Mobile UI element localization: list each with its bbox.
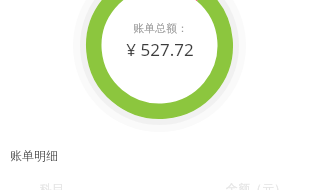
staticText: 账单明细 xyxy=(10,148,58,163)
button[interactable]: 账单总额图表 xyxy=(0,0,320,128)
button[interactable]: 科目 xyxy=(0,181,320,190)
staticText: 账单总额： xyxy=(133,21,188,35)
staticText: 金额（元） xyxy=(226,181,286,190)
button[interactable]: 账单明细 xyxy=(0,143,320,171)
staticText: ¥ 527.72 xyxy=(126,38,194,61)
staticText: 科目 xyxy=(40,181,64,190)
